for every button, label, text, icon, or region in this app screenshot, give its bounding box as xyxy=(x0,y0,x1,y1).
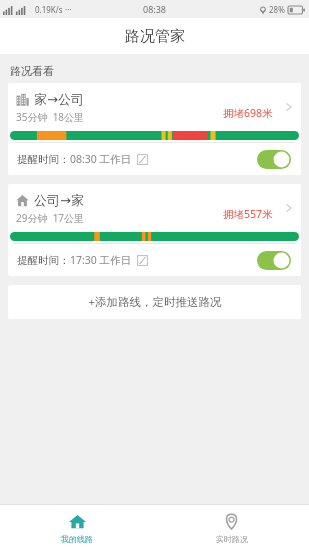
button[interactable]: 我的线路 xyxy=(0,505,154,550)
button[interactable]: +添加路线，定时推送路况 xyxy=(8,285,301,319)
staticText: 拥堵698米 xyxy=(223,106,273,120)
other: 查看详情 xyxy=(283,202,295,214)
button[interactable]: 提醒开关 xyxy=(257,150,291,169)
button[interactable]: 提醒开关 xyxy=(257,251,291,270)
staticText: 0.19K/s xyxy=(35,4,63,15)
staticText: ··· xyxy=(65,4,72,15)
staticText: 提醒时间： xyxy=(17,254,70,267)
staticText: 我的线路 xyxy=(61,534,93,544)
staticText: 实时路况 xyxy=(216,534,248,544)
staticText: 路况看看 xyxy=(10,64,54,78)
staticText: 家→公司 xyxy=(34,91,84,107)
staticText: +添加路线，定时推送路况 xyxy=(88,294,222,310)
button[interactable]: 家→公司 xyxy=(8,83,301,131)
staticText: 29分钟 17公里 xyxy=(16,211,85,225)
staticText: 28% xyxy=(269,4,285,15)
staticText: 公司→家 xyxy=(34,192,84,208)
staticText: 08:30 工作日 xyxy=(70,152,132,166)
staticText: 08:38 xyxy=(143,3,167,15)
staticText: 17:30 工作日 xyxy=(70,253,132,267)
staticText: 35分钟 18公里 xyxy=(16,110,85,124)
button[interactable]: 实时路况 xyxy=(154,505,309,550)
button[interactable]: 编辑提醒时间 xyxy=(136,254,149,267)
button[interactable]: 公司→家 xyxy=(8,184,301,232)
other: 查看详情 xyxy=(283,101,295,113)
button[interactable]: 编辑提醒时间 xyxy=(136,153,149,166)
staticText: 拥堵557米 xyxy=(223,207,273,221)
staticText: 提醒时间： xyxy=(17,153,70,166)
staticText: 路况管家 xyxy=(125,27,185,46)
